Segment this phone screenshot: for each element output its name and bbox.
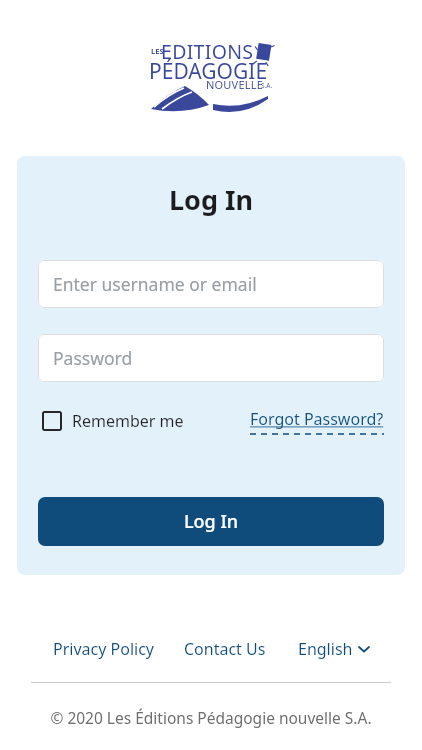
- staticText: LES: [151, 46, 164, 56]
- button[interactable]: Privacy Policy: [53, 638, 154, 660]
- staticText: Log In: [0, 181, 422, 218]
- staticText: EDITIONS: [161, 38, 254, 65]
- staticText: English: [298, 638, 353, 660]
- staticText: Log In: [184, 509, 239, 534]
- staticText: © 2020 Les Éditions Pédagogie nouvelle S…: [0, 707, 422, 728]
- button[interactable]: Enter username or email: [38, 260, 384, 308]
- staticText: Password: [53, 346, 133, 370]
- button[interactable]: Log In: [38, 497, 384, 546]
- button[interactable]: Contact Us: [184, 638, 266, 660]
- button[interactable]: Forgot Password?: [214, 408, 384, 435]
- button[interactable]: Remember me: [42, 410, 184, 432]
- staticText: NOUVELLE: [206, 77, 263, 92]
- staticText: PÉDAGOGIE: [149, 57, 268, 86]
- staticText: S.A.: [261, 81, 273, 90]
- staticText: Forgot Password?: [250, 408, 384, 430]
- button[interactable]: English: [298, 638, 369, 660]
- staticText: Enter username or email: [53, 272, 257, 296]
- button[interactable]: Password: [38, 334, 384, 382]
- staticText: Remember me: [72, 410, 184, 432]
